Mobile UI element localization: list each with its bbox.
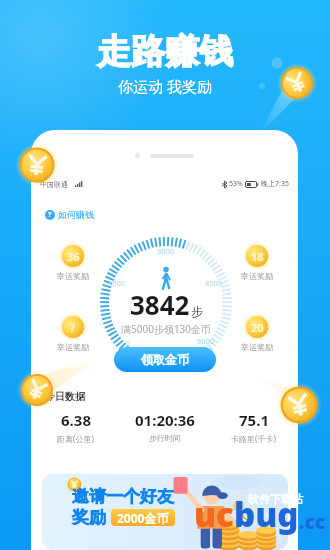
button[interactable]: 18 <box>228 241 286 281</box>
staticText: 如何赚钱 <box>58 209 94 220</box>
staticText: 6000 <box>197 336 215 346</box>
staticText: 邀请一个好友 <box>72 486 174 507</box>
staticText: 步行时间 <box>149 433 181 443</box>
button[interactable]: 6.38 <box>31 410 120 444</box>
staticText: 3842 <box>130 287 190 322</box>
staticText: 0 <box>126 338 131 348</box>
button[interactable]: 75.1 <box>209 410 298 444</box>
staticText: 满5000步领130金币 <box>121 322 212 336</box>
staticText: 步 <box>191 304 203 319</box>
staticText: ? <box>48 210 52 220</box>
button[interactable]: ? <box>44 312 102 352</box>
staticText: 幸运奖励 <box>241 271 273 281</box>
staticText: 01:20:36 <box>135 410 195 430</box>
staticText: 距离(公里) <box>57 433 94 444</box>
staticText: 53% <box>229 179 243 189</box>
staticText: 幸运奖励 <box>57 342 89 352</box>
staticText: .cc <box>299 509 325 535</box>
staticText: 你运动 我奖励 <box>118 76 212 96</box>
staticText: 中国联通 <box>40 180 68 189</box>
staticText: 今日数据 <box>45 390 85 403</box>
staticText: 奖励 <box>72 507 106 528</box>
staticText: 走路赚钱 <box>97 30 233 73</box>
staticText: 18 <box>251 249 264 264</box>
button[interactable]: ? <box>43 207 96 222</box>
staticText: 1500 <box>108 278 126 288</box>
staticText: 领取金币 <box>141 352 189 367</box>
staticText: 软件下载站 <box>248 492 303 506</box>
staticText: 卡路里(千卡) <box>231 433 276 444</box>
button[interactable]: 20 <box>228 312 286 352</box>
staticText: uc <box>194 492 234 537</box>
staticText: bug <box>234 492 299 537</box>
button[interactable]: 邀请一个好友 <box>42 474 288 550</box>
staticText: 36 <box>67 249 80 264</box>
staticText: 6.38 <box>61 410 91 430</box>
button[interactable]: 36 <box>44 241 102 281</box>
staticText: 幸运奖励 <box>241 342 273 352</box>
staticText: ? <box>70 320 76 335</box>
staticText: 75.1 <box>239 410 269 430</box>
button[interactable]: 01:20:36 <box>120 410 209 443</box>
button[interactable]: 领取金币 <box>114 347 216 372</box>
staticText: 晚上7:35 <box>261 179 289 189</box>
staticText: 20 <box>251 320 264 335</box>
staticText: 2000金币 <box>117 510 169 526</box>
staticText: 3000 <box>157 246 175 256</box>
staticText: 幸运奖励 <box>57 271 89 281</box>
staticText: 4500 <box>205 278 223 288</box>
